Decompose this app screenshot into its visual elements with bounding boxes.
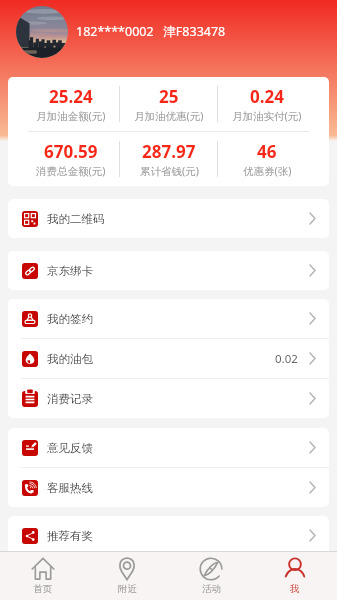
button[interactable]: 消费记录 [8,379,329,418]
staticText: 25.24 [49,85,93,108]
staticText: 客服热线 [47,481,93,495]
staticText: 我的二维码 [47,212,105,226]
staticText: 附近 [118,583,137,595]
staticText: 月加油金额(元) [36,109,106,123]
button[interactable]: 客服热线 [8,468,329,507]
staticText: 活动 [202,583,221,595]
staticText: 287.97 [142,140,196,163]
staticText: 消费总金额(元) [36,164,106,178]
button[interactable]: 我 [253,552,337,600]
button[interactable]: 活动 [169,552,253,600]
button[interactable]: 我的签约 [8,299,329,338]
staticText: 182****0002 津F833478 [76,23,226,40]
staticText: 累计省钱(元) [140,164,199,178]
button[interactable]: 京东绑卡 [8,251,329,290]
staticText: 月加油实付(元) [232,109,302,123]
staticText: 月加油优惠(元) [134,109,204,123]
staticText: 0.24 [250,85,284,108]
staticText: 京东绑卡 [47,264,93,278]
button[interactable]: 推荐有奖 [8,516,329,555]
button[interactable]: 我的二维码 [8,199,329,238]
staticText: 25 [159,85,179,108]
staticText: 消费记录 [47,392,93,406]
staticText: 46 [257,140,277,163]
staticText: 我的签约 [47,312,93,326]
button[interactable]: 意见反馈 [8,428,329,467]
staticText: 670.59 [44,140,98,163]
staticText: 优惠券(张) [243,164,292,178]
staticText: 我的油包 [47,352,93,366]
staticText: 我 [290,583,300,595]
button[interactable]: 附近 [85,552,169,600]
staticText: 首页 [33,583,52,595]
button[interactable]: 首页 [0,552,85,600]
staticText: 0.02 [275,351,298,367]
staticText: 推荐有奖 [47,529,93,543]
staticText: 意见反馈 [47,441,93,455]
button[interactable]: 我的油包 [8,339,329,378]
